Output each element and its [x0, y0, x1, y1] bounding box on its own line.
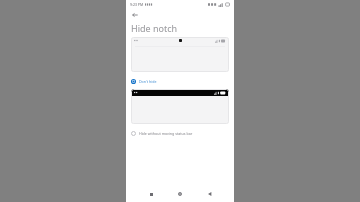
button[interactable]	[131, 37, 229, 72]
button[interactable]	[131, 89, 229, 124]
staticText: 9:23 PM	[130, 2, 144, 7]
button[interactable]: Back	[130, 10, 140, 20]
button[interactable]: Don't hide	[131, 77, 229, 85]
staticText: Don't hide	[139, 79, 157, 84]
staticText: Hide notch	[131, 22, 178, 34]
button[interactable]: Recent apps	[146, 189, 156, 199]
staticText: Hide without moving status bar	[139, 131, 193, 136]
button[interactable]: Hide without moving status bar	[131, 129, 229, 137]
button[interactable]: Home	[175, 189, 185, 199]
button[interactable]: Back	[205, 189, 215, 199]
